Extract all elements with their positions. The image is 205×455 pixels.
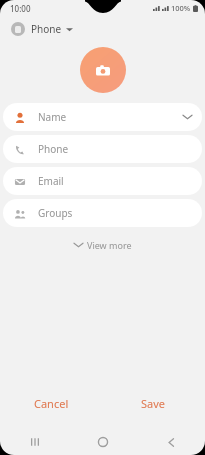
button[interactable]: Phone <box>9 19 75 39</box>
staticText: Groups <box>38 206 192 220</box>
button[interactable]: Save <box>102 388 205 419</box>
staticText: Email <box>38 174 192 188</box>
button[interactable]: View more <box>0 239 205 251</box>
staticText: Phone <box>38 142 192 156</box>
button[interactable]: Add photo <box>80 47 126 93</box>
button[interactable]: Groups <box>3 199 202 227</box>
staticText: Phone <box>31 22 62 36</box>
button[interactable]: Name <box>3 103 202 131</box>
button[interactable]: Cancel <box>0 388 102 419</box>
staticText: Save <box>141 396 166 411</box>
button[interactable]: Home <box>69 429 137 455</box>
staticText: 100% <box>171 3 191 13</box>
button[interactable]: Back <box>137 429 205 455</box>
button[interactable]: Recents <box>0 429 69 455</box>
staticText: Name <box>38 110 183 124</box>
staticText: Cancel <box>34 396 69 411</box>
staticText: 10:00 <box>10 3 31 14</box>
button[interactable]: Phone <box>3 135 202 163</box>
button[interactable]: Email <box>3 167 202 195</box>
staticText: View more <box>87 239 132 251</box>
